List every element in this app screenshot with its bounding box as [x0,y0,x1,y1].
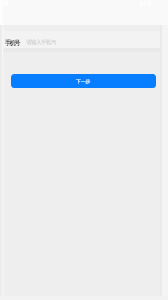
staticText: 请输入手机号 [26,39,56,46]
staticText: 下一步 [76,78,91,84]
button[interactable]: 下一步 [11,74,156,88]
staticText: 手机号 [5,39,19,47]
button[interactable]: 手机号 [0,31,168,48]
